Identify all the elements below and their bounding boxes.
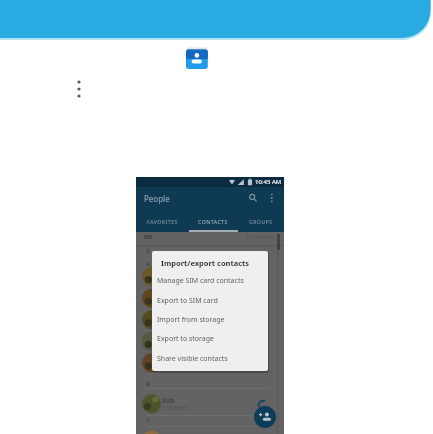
button[interactable] [266, 190, 279, 208]
button[interactable] [72, 76, 86, 102]
button[interactable]: Import from storage [152, 310, 268, 329]
button[interactable]: GROUPS [236, 210, 284, 232]
staticText: Manage SIM card contacts [157, 276, 244, 286]
staticText: 336-5563 [162, 404, 188, 412]
staticText: GROUPS [249, 218, 273, 225]
staticText: C [146, 416, 150, 424]
staticText: S [146, 247, 150, 255]
staticText: ME [144, 233, 153, 240]
staticText: A [146, 260, 151, 268]
button[interactable]: Manage SIM card contacts [152, 271, 268, 290]
staticText: 10 contacts [246, 233, 274, 240]
staticText: FAVORITES [147, 218, 178, 225]
staticText: Export to storage [157, 334, 215, 344]
button[interactable]: Share visible contacts [152, 349, 268, 368]
button[interactable]: Bob [136, 389, 284, 415]
button[interactable]: FAVORITES [138, 210, 187, 232]
button[interactable] [186, 47, 209, 70]
button[interactable]: Export to SIM card [152, 291, 268, 310]
button[interactable]: Import/export contacts [152, 253, 268, 272]
staticText: B [146, 380, 150, 388]
staticText: Share visible contacts [157, 354, 228, 364]
staticText: People [144, 193, 170, 204]
staticText: 10:45 AM [255, 178, 282, 186]
staticText: CONTACTS [198, 218, 228, 225]
staticText: Bob [162, 396, 175, 405]
staticText: Import from storage [157, 315, 225, 325]
button[interactable]: Export to storage [152, 329, 268, 348]
button[interactable] [254, 406, 276, 428]
staticText: Export to SIM card [157, 296, 218, 306]
staticText: Import/export contacts [161, 258, 250, 268]
button[interactable] [245, 190, 262, 208]
button[interactable]: CONTACTS [188, 210, 237, 232]
